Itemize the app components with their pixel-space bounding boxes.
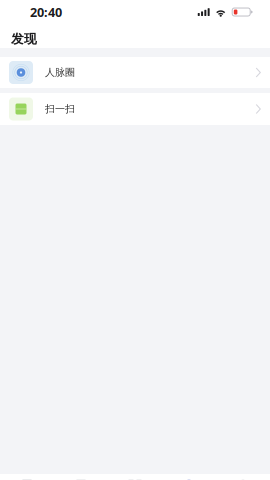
button[interactable]: 扫一扫 — [0, 93, 270, 125]
button[interactable]: 发现 — [162, 474, 216, 480]
button[interactable]: 人脉圈 — [0, 57, 270, 88]
staticText: 扫一扫 — [45, 103, 75, 115]
staticText: 发现 — [11, 31, 37, 47]
staticText: 20:40 — [30, 3, 62, 21]
staticText: 人脉圈 — [45, 66, 75, 79]
button[interactable]: 消息 — [0, 474, 54, 480]
